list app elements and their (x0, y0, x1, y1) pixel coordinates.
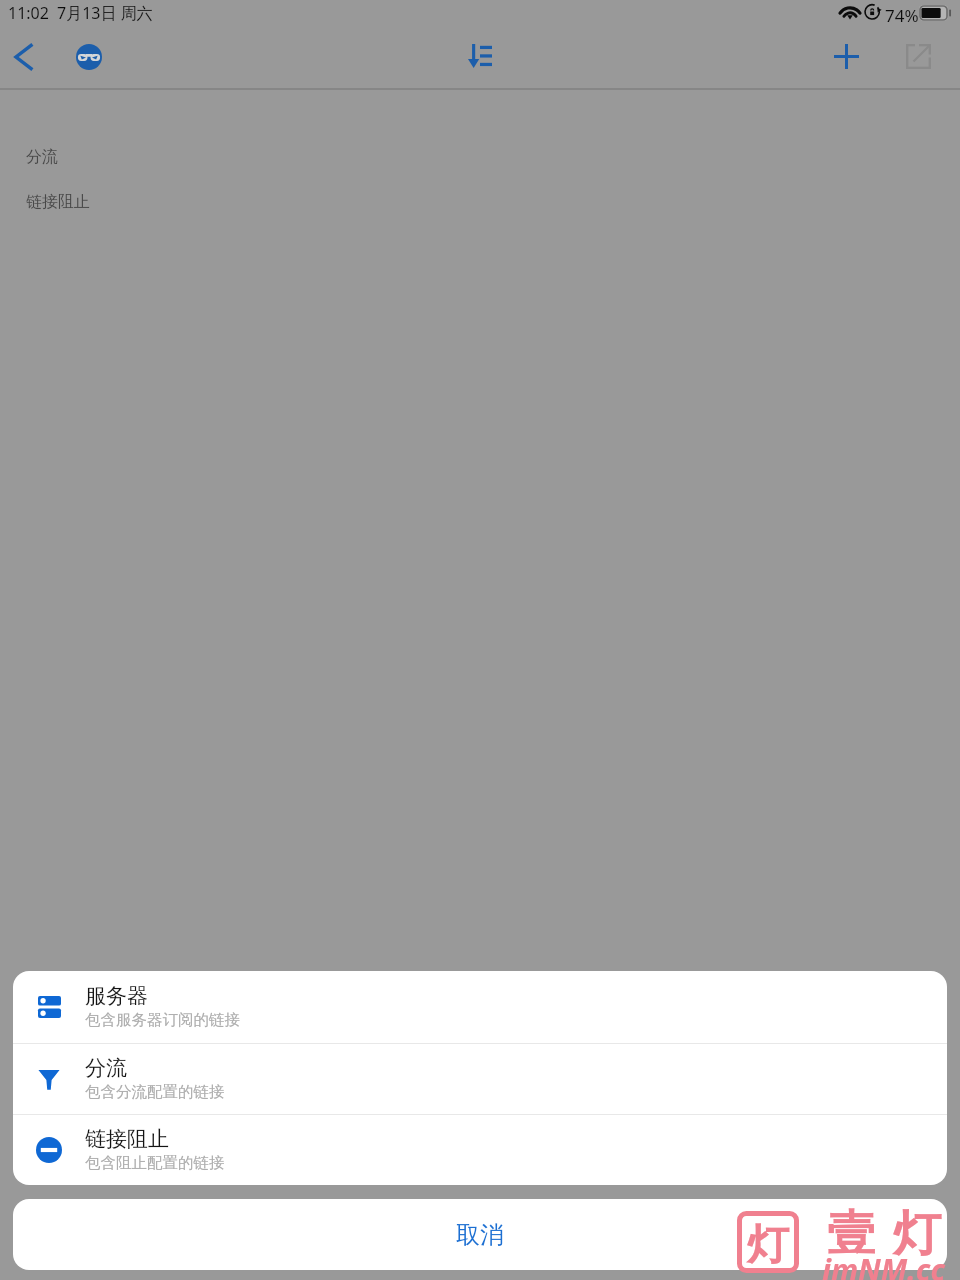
staticText: 服务器 (85, 983, 148, 1009)
staticText: 包含分流配置的链接 (85, 1082, 225, 1102)
staticText: 分流 (26, 147, 58, 167)
button[interactable]: 取消 (13, 1199, 947, 1270)
staticText: 壹灯 (818, 1204, 950, 1264)
staticText: imNM.cc (822, 1249, 945, 1280)
button[interactable]: Profile (65, 33, 113, 81)
button[interactable]: 分流 (13, 1044, 947, 1114)
staticText: 包含阻止配置的链接 (85, 1153, 225, 1173)
staticText: 7月13日 周六 (57, 2, 153, 24)
staticText: 包含服务器订阅的链接 (85, 1010, 240, 1030)
staticText: 链接阻止 (85, 1126, 169, 1152)
staticText: 链接阻止 (26, 192, 90, 212)
staticText: 灯 (747, 1219, 789, 1272)
button[interactable]: Open in new window (894, 32, 942, 80)
staticText: 11:02 (8, 2, 49, 24)
button[interactable]: 服务器 (13, 971, 947, 1043)
staticText: 取消 (456, 1220, 504, 1250)
staticText: 分流 (85, 1055, 127, 1081)
staticText: 74% (885, 4, 919, 27)
button[interactable]: 链接阻止 (13, 1115, 947, 1185)
button[interactable]: Sort (456, 32, 504, 80)
button[interactable]: Back (0, 33, 48, 81)
button[interactable]: Add (822, 32, 870, 80)
